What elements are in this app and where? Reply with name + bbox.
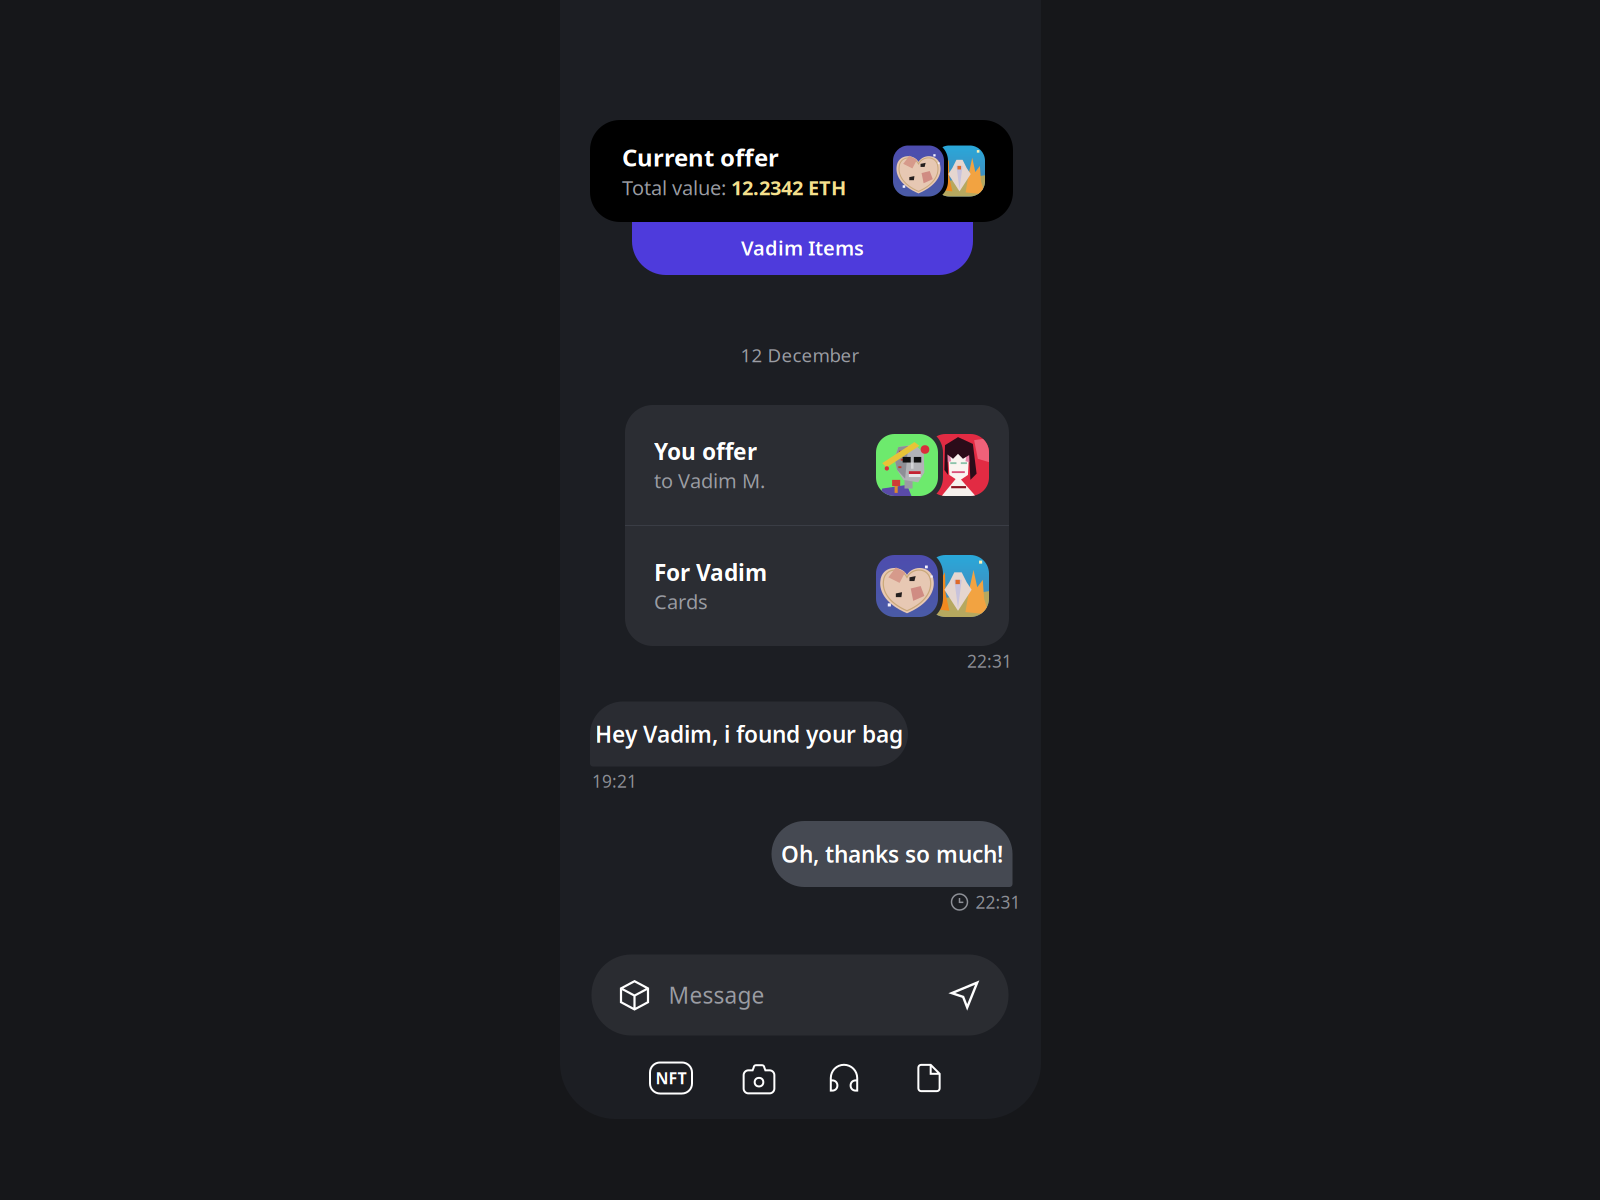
button[interactable]: Message field bbox=[656, 973, 942, 1017]
staticText: 12.2342 ETH bbox=[731, 174, 846, 201]
button[interactable]: Hey Vadim, i found your bag bbox=[590, 701, 908, 766]
staticText: Message bbox=[668, 980, 764, 1010]
staticText: Oh, thanks so much! bbox=[781, 839, 1003, 869]
staticText: Cards bbox=[654, 588, 708, 615]
button[interactable]: Attach NFT bbox=[612, 973, 656, 1017]
button[interactable]: Audio bbox=[814, 1054, 874, 1102]
staticText: NFT bbox=[655, 1067, 686, 1089]
button[interactable]: NFT bbox=[641, 1054, 701, 1102]
staticText: Hey Vadim, i found your bag bbox=[595, 719, 903, 749]
staticText: 22:31 bbox=[975, 890, 1020, 913]
button[interactable]: Documents bbox=[899, 1054, 959, 1102]
button[interactable]: You offer bbox=[625, 405, 1009, 646]
staticText: 22:31 bbox=[967, 649, 1012, 672]
staticText: 19:21 bbox=[592, 769, 637, 792]
staticText: You offer bbox=[654, 436, 757, 466]
button[interactable]: Vadim Items bbox=[632, 135, 973, 275]
button[interactable]: Send bbox=[942, 973, 986, 1017]
button[interactable]: Oh, thanks so much! bbox=[771, 821, 1012, 887]
staticText: Total value: bbox=[622, 174, 731, 201]
staticText: Vadim Items bbox=[741, 234, 864, 261]
staticText: Current offer bbox=[622, 141, 779, 173]
staticText: to Vadim M. bbox=[654, 467, 765, 494]
button[interactable]: Current offer bbox=[590, 120, 1013, 222]
staticText: For Vadim bbox=[654, 557, 767, 587]
staticText: 12 December bbox=[740, 343, 859, 367]
button[interactable]: Camera bbox=[729, 1054, 789, 1102]
